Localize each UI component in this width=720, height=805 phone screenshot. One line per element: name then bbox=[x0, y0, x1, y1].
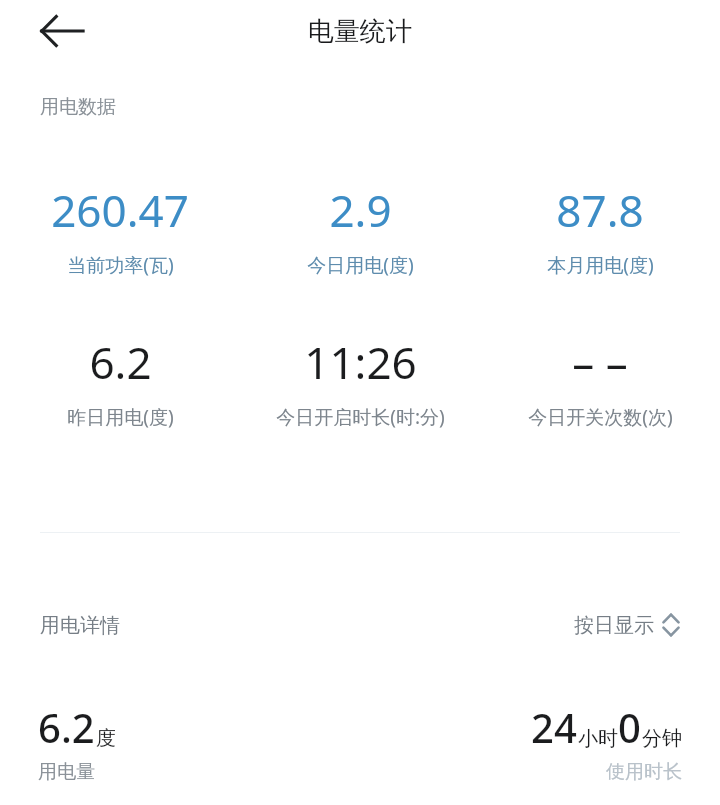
staticText: 按日显示 bbox=[574, 613, 654, 638]
staticText: 6.2 bbox=[38, 700, 95, 754]
button[interactable]: 260.47 bbox=[0, 180, 240, 278]
staticText: 小时 bbox=[578, 726, 618, 751]
staticText: 当前功率(瓦) bbox=[67, 252, 174, 278]
button[interactable]: 用电详情 bbox=[40, 613, 120, 638]
staticText: 260.47 bbox=[51, 180, 189, 240]
button[interactable]: 87.8 bbox=[480, 180, 720, 278]
staticText: 87.8 bbox=[556, 180, 644, 240]
staticText: 今日开启时长(时:分) bbox=[276, 404, 445, 430]
staticText: 用电量 bbox=[38, 760, 95, 784]
staticText: 本月用电(度) bbox=[547, 252, 654, 278]
staticText: 电量统计 bbox=[308, 15, 412, 48]
staticText: 今日开关次数(次) bbox=[528, 404, 673, 430]
button[interactable]: 11:26 bbox=[240, 332, 480, 430]
staticText: 6.2 bbox=[89, 332, 152, 392]
staticText: 24 bbox=[531, 700, 577, 754]
staticText: 今日用电(度) bbox=[307, 252, 414, 278]
button[interactable]: 6.2 bbox=[0, 332, 240, 430]
staticText: 0 bbox=[618, 700, 641, 754]
staticText: 11:26 bbox=[304, 332, 417, 392]
staticText: 分钟 bbox=[642, 726, 682, 751]
staticText: 用电数据 bbox=[40, 95, 116, 119]
button[interactable]: 按日显示 bbox=[570, 608, 684, 642]
staticText: 度 bbox=[96, 726, 116, 751]
staticText: – – bbox=[572, 332, 628, 392]
staticText: 使用时长 bbox=[606, 760, 682, 784]
staticText: 2.9 bbox=[329, 180, 392, 240]
button[interactable]: 2.9 bbox=[240, 180, 480, 278]
staticText: 昨日用电(度) bbox=[67, 404, 174, 430]
button[interactable]: – – bbox=[480, 332, 720, 430]
button[interactable]: 返回 bbox=[30, 0, 94, 62]
